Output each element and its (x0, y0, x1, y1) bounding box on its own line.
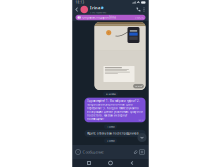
button[interactable]: Back (74, 5, 80, 14)
button[interactable]: Call (135, 5, 141, 14)
button[interactable]: Back (127, 159, 137, 167)
staticText: Ждите, отвечу вам после праздников (87, 132, 139, 135)
staticText: 5 ноября (106, 139, 114, 142)
staticText: 1 ноября (106, 125, 114, 128)
button[interactable]: Emoji (75, 149, 80, 154)
button[interactable]: More options (141, 5, 146, 14)
button[interactable]: Recent apps (84, 159, 94, 167)
button[interactable]: Scroll to bottom (137, 133, 146, 142)
staticText: Сообщение (82, 149, 103, 155)
button[interactable]: Attach (132, 148, 138, 155)
staticText: 18:12 (138, 118, 143, 121)
staticText: Irina (90, 5, 100, 10)
staticText: Отправьте подарок Irina (82, 16, 115, 19)
staticText: 20 октября (105, 92, 115, 95)
staticText: ОТКРЫТЬ (134, 16, 143, 19)
button[interactable]: Camera (138, 148, 145, 155)
staticText: 5 842 подписчика (90, 11, 106, 14)
button[interactable]: Home (105, 159, 115, 167)
staticText: 19:40 (138, 133, 143, 136)
staticText: Здравствуйте! 1. Вы забрали туфли? 2. Те… (87, 99, 143, 121)
staticText: 14:22 (134, 85, 139, 88)
button[interactable]: Отправьте подарок Irina (72, 14, 148, 21)
staticText: 18:13 (75, 1, 84, 4)
